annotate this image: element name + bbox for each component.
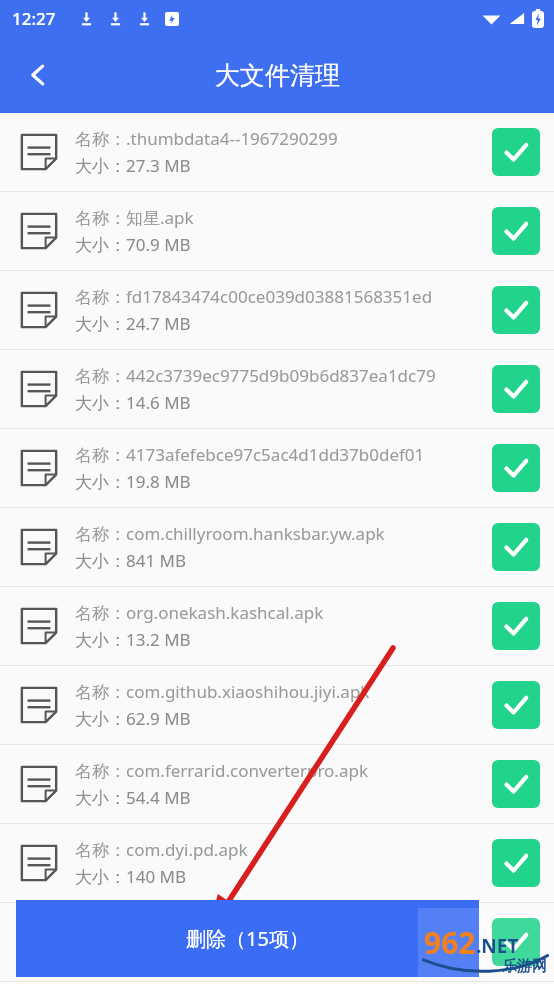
- staticText: 删除（15项）: [186, 925, 309, 952]
- staticText: 大小：140 MB: [75, 865, 187, 888]
- button[interactable]: 名称：com.dyi.pd.apk: [0, 824, 554, 902]
- staticText: 乐游网: [502, 957, 547, 976]
- button[interactable]: Selected: [492, 207, 540, 255]
- staticText: 大小：19.8 MB: [75, 470, 191, 493]
- staticText: 大文件清理: [215, 60, 340, 91]
- button[interactable]: 名称：com.ferrarid.converterpro.apk: [0, 745, 554, 823]
- staticText: 大小：24.7 MB: [75, 312, 191, 335]
- button[interactable]: 名称：com.github.xiaoshihou.jiyi.apk: [0, 666, 554, 744]
- staticText: 大小：841 MB: [75, 549, 187, 572]
- staticText: 名称：com.ferrarid.converterpro.apk: [75, 759, 368, 782]
- staticText: 大小：14.6 MB: [75, 391, 191, 414]
- staticText: 大小：27.3 MB: [75, 154, 191, 177]
- staticText: 大小：70.9 MB: [75, 233, 191, 256]
- staticText: .NET: [476, 933, 519, 959]
- button[interactable]: Selected: [492, 918, 540, 966]
- staticText: 名称：com.dyi.pd.apk: [75, 838, 248, 861]
- button[interactable]: Selected: [492, 523, 540, 571]
- staticText: 12:27: [12, 7, 56, 30]
- staticText: 名称：com.github.xiaoshihou.jiyi.apk: [75, 680, 370, 703]
- button[interactable]: 名称：com.chillyroom.hanksbar.yw.apk: [0, 508, 554, 586]
- staticText: 大小：88.1 MB: [75, 944, 191, 967]
- staticText: 名称：org.onekash.kashcal.apk: [75, 601, 324, 624]
- staticText: 名称：4173afefebce97c5ac4d1dd37b0def01: [75, 443, 425, 466]
- staticText: 962: [424, 922, 476, 963]
- button[interactable]: Selected: [492, 760, 540, 808]
- staticText: 名称：com.chillyroom.hanksbar.yw.apk: [75, 522, 385, 545]
- button[interactable]: Back: [14, 51, 62, 99]
- button[interactable]: 删除（15项）: [16, 900, 479, 977]
- button[interactable]: 名称：org.onekash.kashcal.apk: [0, 587, 554, 665]
- staticText: 大小：13.2 MB: [75, 628, 191, 651]
- button[interactable]: Selected: [492, 365, 540, 413]
- staticText: 名称：com.extra.hidden.apk: [75, 917, 300, 940]
- button[interactable]: 名称：com.extra.hidden.apk: [0, 903, 554, 981]
- staticText: 大小：62.9 MB: [75, 707, 191, 730]
- button[interactable]: Selected: [492, 128, 540, 176]
- button[interactable]: Selected: [492, 681, 540, 729]
- button[interactable]: Selected: [492, 839, 540, 887]
- button[interactable]: Selected: [492, 286, 540, 334]
- staticText: 名称：知星.apk: [75, 206, 194, 229]
- staticText: 名称：.thumbdata4--1967290299: [75, 127, 338, 150]
- button[interactable]: 名称：fd17843474c00ce039d03881568351ed: [0, 271, 554, 349]
- button[interactable]: 名称：知星.apk: [0, 192, 554, 270]
- staticText: 名称：442c3739ec9775d9b09b6d837ea1dc79: [75, 364, 436, 387]
- button[interactable]: 名称：4173afefebce97c5ac4d1dd37b0def01: [0, 429, 554, 507]
- staticText: 名称：fd17843474c00ce039d03881568351ed: [75, 285, 433, 308]
- staticText: 大小：54.4 MB: [75, 786, 191, 809]
- button[interactable]: Selected: [492, 602, 540, 650]
- button[interactable]: 名称：.thumbdata4--1967290299: [0, 113, 554, 191]
- button[interactable]: 名称：442c3739ec9775d9b09b6d837ea1dc79: [0, 350, 554, 428]
- button[interactable]: Selected: [492, 444, 540, 492]
